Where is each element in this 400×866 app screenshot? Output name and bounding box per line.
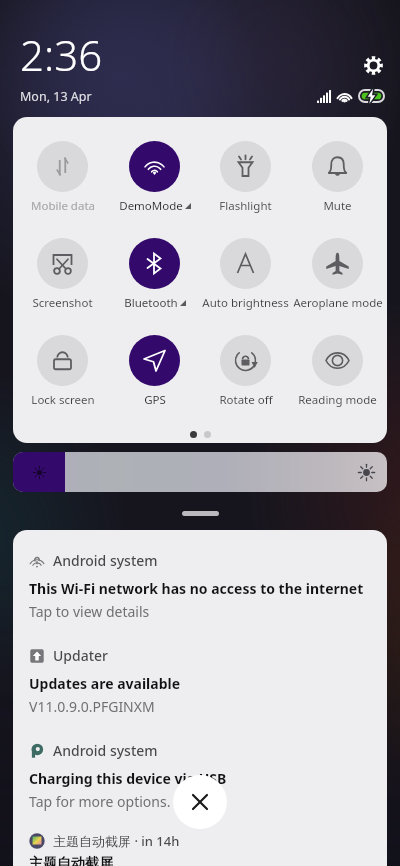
staticText: Mon, 13 Apr [20,88,92,105]
staticText: GPS [144,392,166,408]
button[interactable]: Brightness [13,452,387,492]
staticText: V11.0.9.0.PFGINXM [29,697,155,716]
button[interactable]: Bluetooth [109,238,200,311]
staticText: Charging this device via USB [29,769,227,788]
staticText: Reading mode [298,392,377,408]
staticText: Aeroplane mode [293,295,383,311]
button[interactable]: GPS [109,335,200,408]
staticText: Flashlight [219,198,272,214]
button[interactable]: Close notifications [173,775,227,829]
staticText: Tap to view details [29,602,150,621]
button[interactable]: Updater [29,646,371,716]
staticText: Updates are available [29,674,181,693]
staticText: 主题自动截屏 · in 14h [53,832,180,850]
button[interactable]: Mute [292,141,383,214]
staticText: Auto brightness [202,295,289,311]
button[interactable]: Lock screen [17,335,108,408]
button[interactable]: 主题自动截屏 · in 14h [29,832,371,850]
staticText: Updater [53,646,109,665]
staticText: Screenshot [32,295,93,311]
staticText: This Wi-Fi network has no access to the … [29,579,364,598]
button[interactable]: Rotate off [200,335,291,408]
staticText: Mobile data [31,198,95,214]
button[interactable]: Settings [359,51,387,79]
staticText: Mute [323,198,352,214]
button[interactable]: Flashlight [200,141,291,214]
staticText: Rotate off [219,392,273,408]
button[interactable]: DemoMode [109,141,200,214]
button[interactable]: Android system [29,551,371,621]
button[interactable]: Aeroplane mode [292,238,383,311]
button[interactable]: Auto brightness [200,238,291,311]
button[interactable]: Reading mode [292,335,383,408]
staticText: DemoMode [119,198,183,214]
staticText: Tap for more options. [29,792,171,811]
staticText: Lock screen [31,392,95,408]
button[interactable]: Android system [29,741,371,811]
staticText: 2:36 [20,26,103,83]
staticText: Android system [53,551,158,570]
button[interactable]: Mobile data [17,141,108,214]
staticText: Android system [53,741,158,760]
staticText: 主题自动截屏 [29,855,113,866]
staticText: Bluetooth [124,295,178,311]
button[interactable]: Screenshot [17,238,108,311]
